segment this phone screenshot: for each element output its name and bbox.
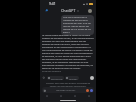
button[interactable]: Voice xyxy=(90,89,93,92)
button[interactable]: Attach xyxy=(86,89,89,92)
button[interactable]: Tab 2 xyxy=(68,93,82,98)
button[interactable]: New chat xyxy=(44,8,49,13)
button[interactable]: Tab 0 xyxy=(40,93,54,98)
button[interactable]: Message ChatGPT xyxy=(43,87,93,93)
staticText: ChatGPT xyxy=(61,8,76,13)
button[interactable]: C'est une la fameux que la classique de … xyxy=(63,16,92,34)
button[interactable]: Recherche xyxy=(48,76,63,80)
staticText: C'est une la fameux que la classique de … xyxy=(63,16,92,34)
button[interactable]: Profile xyxy=(88,9,92,13)
button[interactable]: Tab 1 xyxy=(54,93,68,98)
staticText: Pose une question xyxy=(42,70,62,73)
staticText: Images xyxy=(69,77,78,80)
button[interactable]: ChatGPT xyxy=(61,8,79,13)
staticText: Recherche xyxy=(51,77,63,80)
staticText: Le conflit israélo-palestinien a connu u… xyxy=(42,34,94,70)
button[interactable]: Voice mode xyxy=(90,76,94,80)
button[interactable]: Images xyxy=(66,76,78,80)
staticText: ChatGPT peut faire des erreurs. Envisage… xyxy=(43,82,93,87)
button[interactable]: Copy xyxy=(42,76,46,80)
staticText: Message ChatGPT xyxy=(56,89,76,92)
button[interactable]: Tab 3 xyxy=(82,93,96,98)
staticText: 9:41 xyxy=(49,1,56,6)
